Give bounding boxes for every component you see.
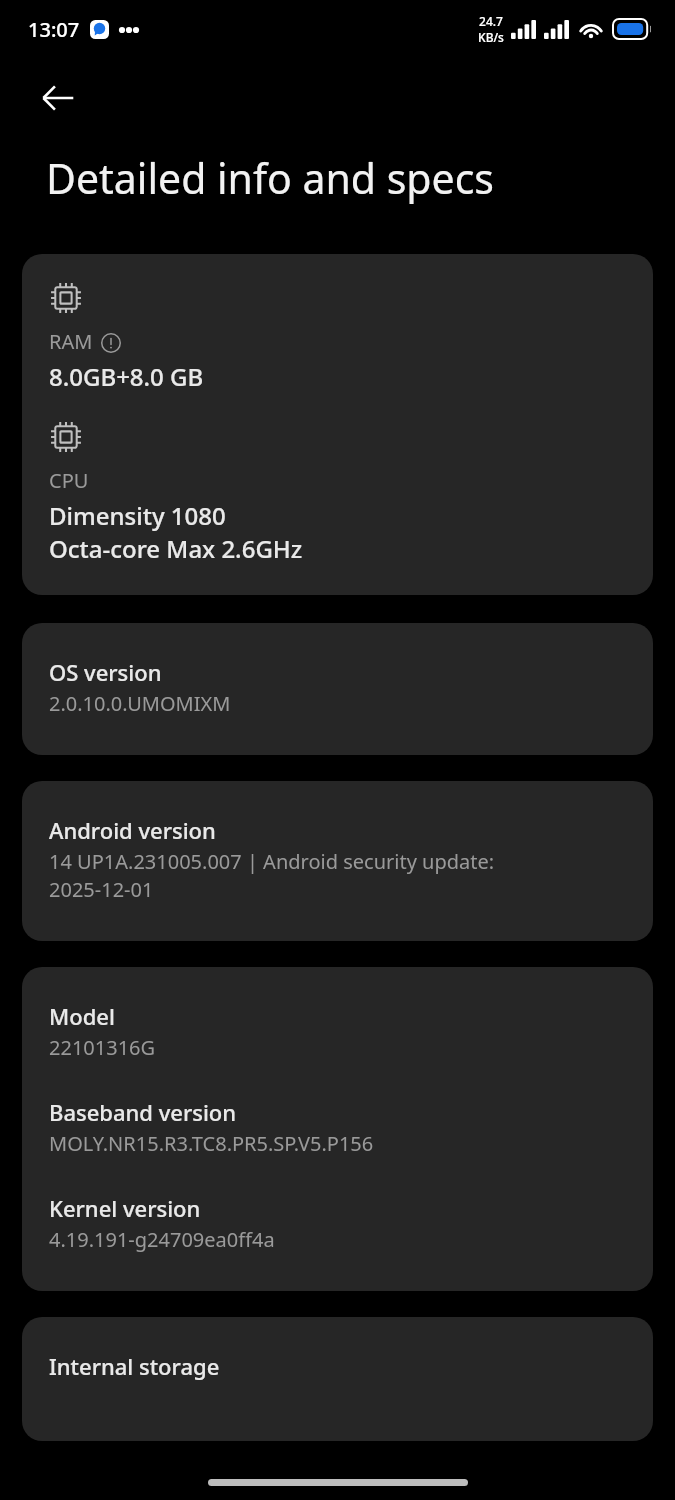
staticText: Kernel version [49,1193,201,1223]
staticText: Android version [49,815,216,845]
button[interactable]: OS version [22,623,653,755]
staticText: RAM [49,328,93,355]
staticText: Dimensity 1080 Octa-core Max 2.6GHz [49,499,303,565]
button[interactable]: Android version [22,781,653,941]
staticText: MOLY.NR15.R3.TC8.PR5.SP.V5.P156 [49,1130,374,1157]
staticText: CPU [49,467,89,494]
staticText: Model [49,1001,115,1031]
staticText: 4.19.191-g24709ea0ff4a [49,1226,275,1253]
staticText: 14 UP1A.231005.007 | Android security up… [49,848,495,903]
button[interactable]: RAM [22,254,653,595]
staticText: Detailed info and specs [46,150,495,206]
staticText: Internal storage [49,1351,220,1381]
button[interactable]: Back [34,74,82,122]
staticText: 22101316G [49,1034,156,1061]
staticText: 2.0.10.0.UMOMIXM [49,690,231,717]
button[interactable]: Model [22,967,653,1291]
staticText: OS version [49,657,162,687]
button[interactable]: Internal storage [22,1317,653,1441]
staticText: KB/s [478,29,504,45]
staticText: 24.7 [479,13,503,29]
staticText: Baseband version [49,1097,237,1127]
staticText: 13:07 [28,16,80,43]
staticText: 8.0GB+8.0 GB [49,360,204,393]
